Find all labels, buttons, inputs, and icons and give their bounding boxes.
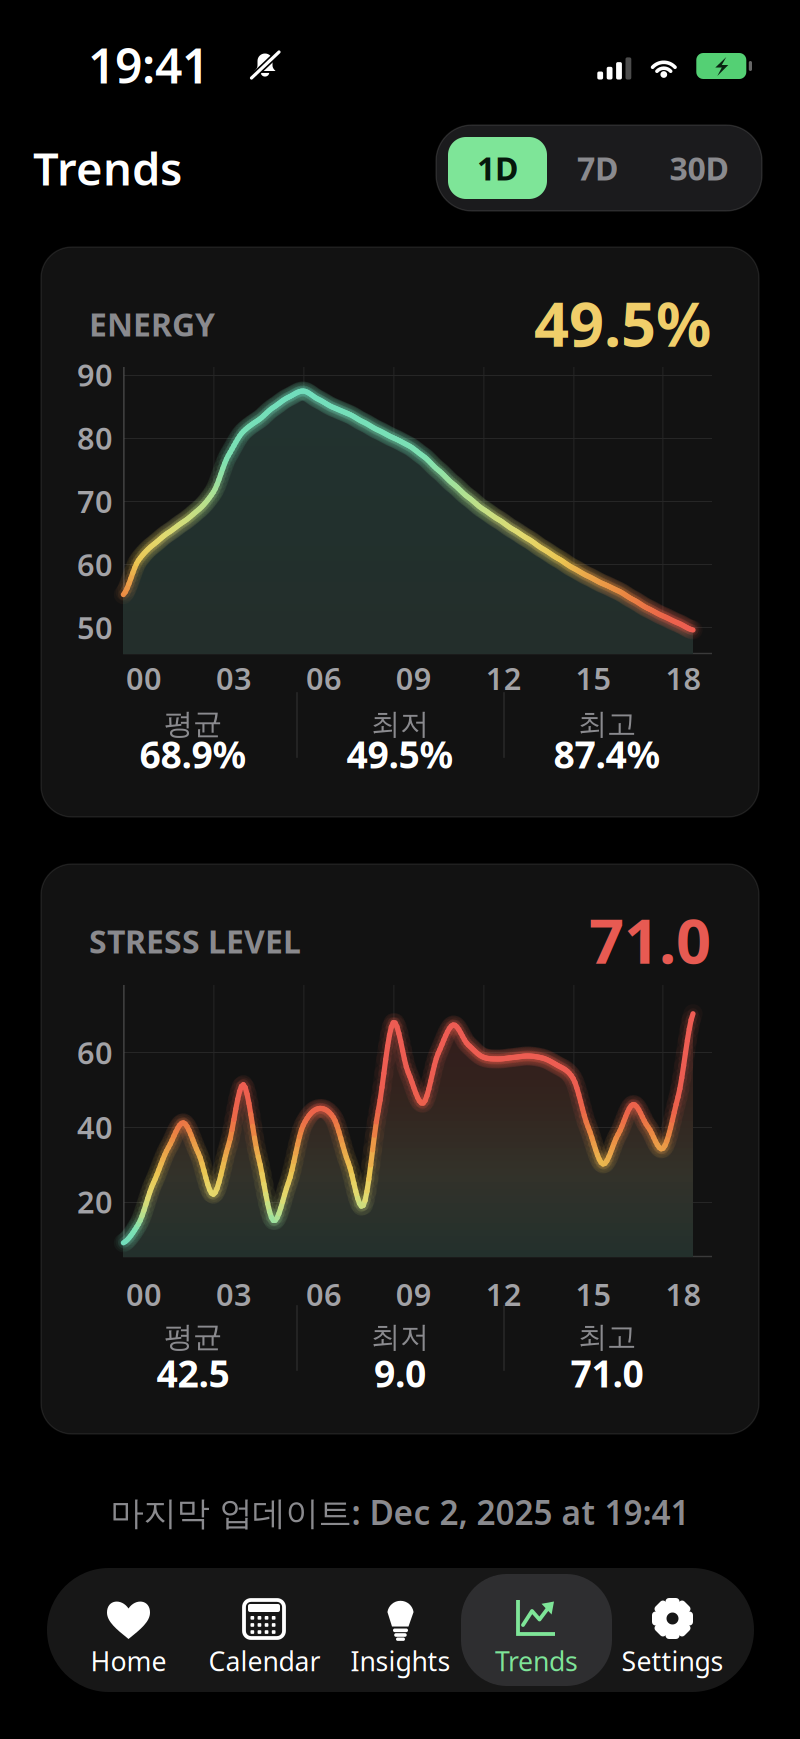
staticText: 06 <box>306 658 342 698</box>
staticText: 50 <box>77 607 113 648</box>
staticText: Trends <box>495 1643 578 1679</box>
staticText: 49.5% <box>346 729 453 779</box>
staticText: 최저 <box>371 1319 429 1355</box>
button[interactable]: Trends <box>468 1568 604 1692</box>
staticText: 20 <box>77 1181 113 1222</box>
staticText: 최저 <box>371 706 429 742</box>
staticText: 06 <box>306 1274 342 1314</box>
button[interactable]: Insights <box>332 1568 468 1692</box>
staticText: 40 <box>77 1107 113 1147</box>
staticText: 30D <box>669 147 728 189</box>
staticText: 03 <box>216 1274 252 1314</box>
staticText: STRESS LEVEL <box>89 920 301 962</box>
staticText: 1D <box>477 147 518 189</box>
staticText: 80 <box>77 417 113 458</box>
staticText: 68.9% <box>139 729 246 779</box>
staticText: ENERGY <box>89 303 215 345</box>
button[interactable]: Settings <box>604 1568 740 1692</box>
button[interactable]: Calendar <box>196 1568 332 1692</box>
staticText: 03 <box>216 658 252 698</box>
staticText: 최고 <box>578 1319 636 1355</box>
staticText: 평균 <box>164 706 222 742</box>
staticText: 71.0 <box>589 899 711 981</box>
staticText: 7D <box>577 147 618 189</box>
staticText: 60 <box>77 544 113 585</box>
staticText: 12 <box>486 658 522 698</box>
staticText: 49.5% <box>534 282 711 364</box>
staticText: 평균 <box>164 1319 222 1355</box>
staticText: 18 <box>665 658 701 698</box>
button[interactable]: 1D <box>448 137 547 199</box>
staticText: Trends <box>33 138 182 198</box>
staticText: 마지막 업데이트: Dec 2, 2025 at 19:41 <box>110 1490 689 1534</box>
staticText: Calendar <box>208 1643 320 1679</box>
staticText: 9.0 <box>374 1348 426 1398</box>
staticText: 70 <box>77 481 113 521</box>
staticText: Settings <box>621 1643 723 1679</box>
button[interactable]: Home <box>60 1568 196 1692</box>
staticText: 90 <box>77 354 113 395</box>
staticText: 60 <box>77 1032 113 1073</box>
staticText: 09 <box>396 658 432 698</box>
staticText: 42.5 <box>156 1348 229 1398</box>
staticText: 12 <box>486 1274 522 1314</box>
staticText: Insights <box>350 1643 450 1679</box>
staticText: 87.4% <box>553 729 660 779</box>
staticText: 15 <box>576 658 612 698</box>
staticText: 15 <box>576 1274 612 1314</box>
staticText: 09 <box>396 1274 432 1314</box>
button[interactable]: 7D <box>547 137 648 199</box>
staticText: 18 <box>665 1274 701 1314</box>
button[interactable]: 30D <box>648 137 750 199</box>
staticText: 71.0 <box>570 1348 643 1398</box>
staticText: 00 <box>126 658 162 698</box>
staticText: 00 <box>126 1274 162 1314</box>
staticText: 19:41 <box>88 33 209 97</box>
staticText: 최고 <box>578 706 636 742</box>
staticText: Home <box>90 1643 166 1679</box>
